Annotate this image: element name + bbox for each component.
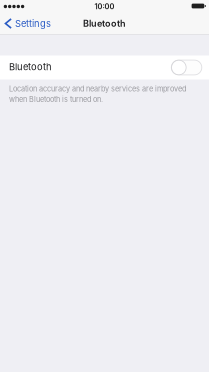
staticText: Settings: [15, 18, 51, 29]
staticText: when Bluetooth is turned on.: [9, 95, 103, 104]
staticText: Bluetooth: [9, 61, 52, 72]
button[interactable]: Settings: [0, 13, 57, 34]
staticText: Location accuracy and nearby services ar…: [9, 84, 186, 93]
button[interactable]: Bluetooth: [0, 55, 209, 79]
staticText: 10:00: [94, 2, 114, 11]
staticText: Bluetooth: [83, 18, 126, 29]
